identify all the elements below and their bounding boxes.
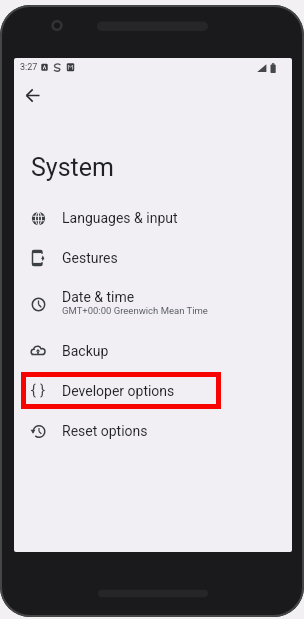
button[interactable]: Gestures <box>14 238 292 278</box>
staticText: Gestures <box>62 250 118 266</box>
staticText: } <box>40 382 45 399</box>
button[interactable]: Languages & input <box>14 198 292 238</box>
staticText: 3:27 <box>20 62 38 73</box>
staticText: GMT+00:00 Greenwich Mean Time <box>62 305 208 316</box>
staticText: Reset options <box>62 423 148 439</box>
staticText: Date & time <box>62 289 135 305</box>
staticText: Backup <box>62 343 109 359</box>
staticText: Developer options <box>62 383 175 399</box>
button[interactable]: Backup <box>14 331 292 371</box>
button[interactable]: Developer options <box>14 371 292 411</box>
staticText: System <box>31 153 114 182</box>
button[interactable] <box>19 82 47 110</box>
button[interactable]: Reset options <box>14 411 292 451</box>
staticText: Languages & input <box>62 210 178 226</box>
staticText: { <box>31 382 36 399</box>
button[interactable]: Date & time <box>14 280 292 328</box>
